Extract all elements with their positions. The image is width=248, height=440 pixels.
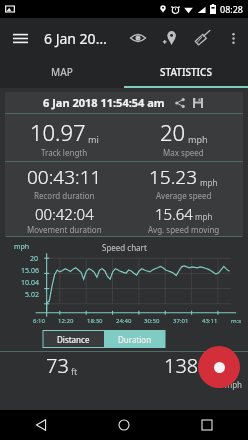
button[interactable]: Show on map: [122, 22, 154, 54]
staticText: 10.97: [30, 117, 86, 147]
staticText: mph: [200, 177, 218, 188]
staticText: 24:40: [116, 317, 132, 325]
staticText: Distance: [57, 334, 90, 345]
button[interactable]: MAP: [0, 58, 124, 86]
staticText: 08:28: [220, 3, 244, 15]
staticText: 6 Jan 2018 11:54:54 am: [43, 95, 165, 110]
staticText: 20: [160, 117, 186, 147]
button[interactable]: Save: [190, 95, 205, 110]
staticText: 43:11: [202, 317, 218, 325]
staticText: 73: [46, 352, 69, 379]
staticText: 12:20: [58, 317, 74, 325]
staticText: Max speed: [163, 147, 204, 158]
button[interactable]: Add waypoint: [154, 22, 186, 54]
staticText: mi: [88, 133, 99, 145]
button[interactable]: Record: [198, 346, 240, 388]
button[interactable]: Back: [28, 412, 54, 438]
staticText: 30:50: [144, 317, 160, 325]
staticText: Avg. speed moving: [148, 224, 220, 235]
staticText: 5.02: [25, 290, 39, 300]
staticText: m:s: [231, 317, 242, 325]
staticText: mph: [188, 133, 208, 145]
staticText: Average speed: [156, 190, 212, 201]
button[interactable]: Home: [111, 412, 137, 438]
staticText: 15.06: [21, 266, 39, 276]
staticText: Speed chart: [102, 242, 147, 253]
staticText: 15.64: [155, 204, 193, 224]
staticText: Movement duration: [27, 224, 102, 235]
button[interactable]: Distance: [43, 331, 104, 348]
staticText: STATISTICS: [160, 65, 212, 79]
staticText: 15.23: [149, 164, 198, 190]
button[interactable]: STATISTICS: [124, 58, 248, 86]
staticText: 10.04: [21, 278, 39, 288]
button[interactable]: More options: [218, 23, 248, 53]
staticText: 0 mph: [218, 379, 242, 390]
staticText: mph: [195, 211, 213, 222]
staticText: Track length: [41, 147, 88, 158]
staticText: 6:10: [33, 317, 45, 325]
button[interactable]: Open navigation drawer: [0, 18, 40, 58]
staticText: Duration: [118, 334, 152, 345]
button[interactable]: Clean track: [186, 22, 218, 54]
staticText: 138: [164, 352, 199, 379]
button[interactable]: Share: [172, 95, 187, 110]
staticText: ft: [71, 365, 78, 377]
staticText: 37:01: [173, 317, 189, 325]
button[interactable]: Duration: [104, 331, 165, 348]
staticText: 18:30: [87, 317, 103, 325]
staticText: 00:42:04: [35, 204, 94, 224]
button[interactable]: Recent apps: [194, 412, 220, 438]
staticText: 20: [30, 254, 39, 264]
staticText: Record duration: [34, 190, 95, 201]
staticText: 6 Jan 20…: [44, 29, 107, 48]
staticText: 00:43:11: [27, 164, 102, 190]
staticText: MAP: [51, 65, 73, 79]
staticText: mph: [14, 242, 30, 252]
